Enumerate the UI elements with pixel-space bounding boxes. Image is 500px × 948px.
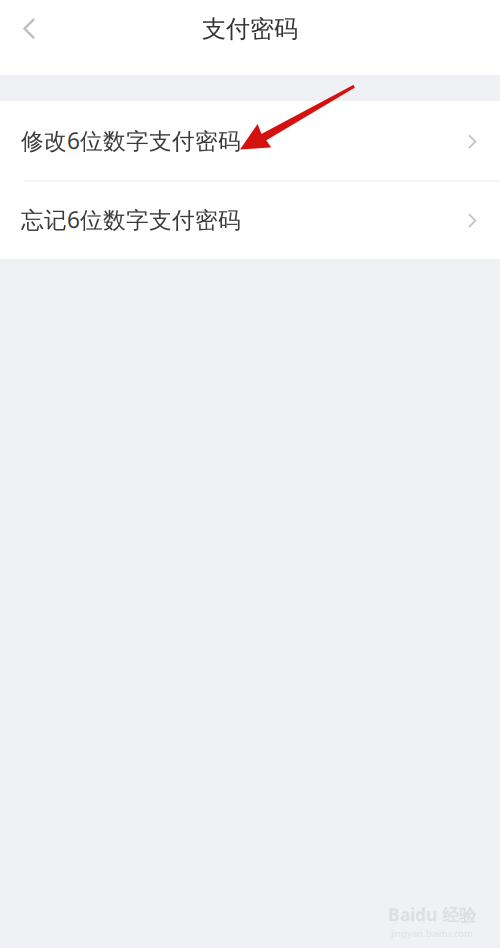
staticText: jingyan.baidu.com xyxy=(391,927,473,939)
button[interactable]: 修改6位数字支付密码 xyxy=(0,101,500,180)
button[interactable]: 忘记6位数字支付密码 xyxy=(0,180,500,259)
staticText: Baidu 经验 xyxy=(388,903,476,926)
staticText: 修改6位数字支付密码 xyxy=(21,125,241,155)
staticText: 忘记6位数字支付密码 xyxy=(21,204,241,234)
staticText: 支付密码 xyxy=(202,14,298,44)
button[interactable]: Back xyxy=(7,7,51,51)
